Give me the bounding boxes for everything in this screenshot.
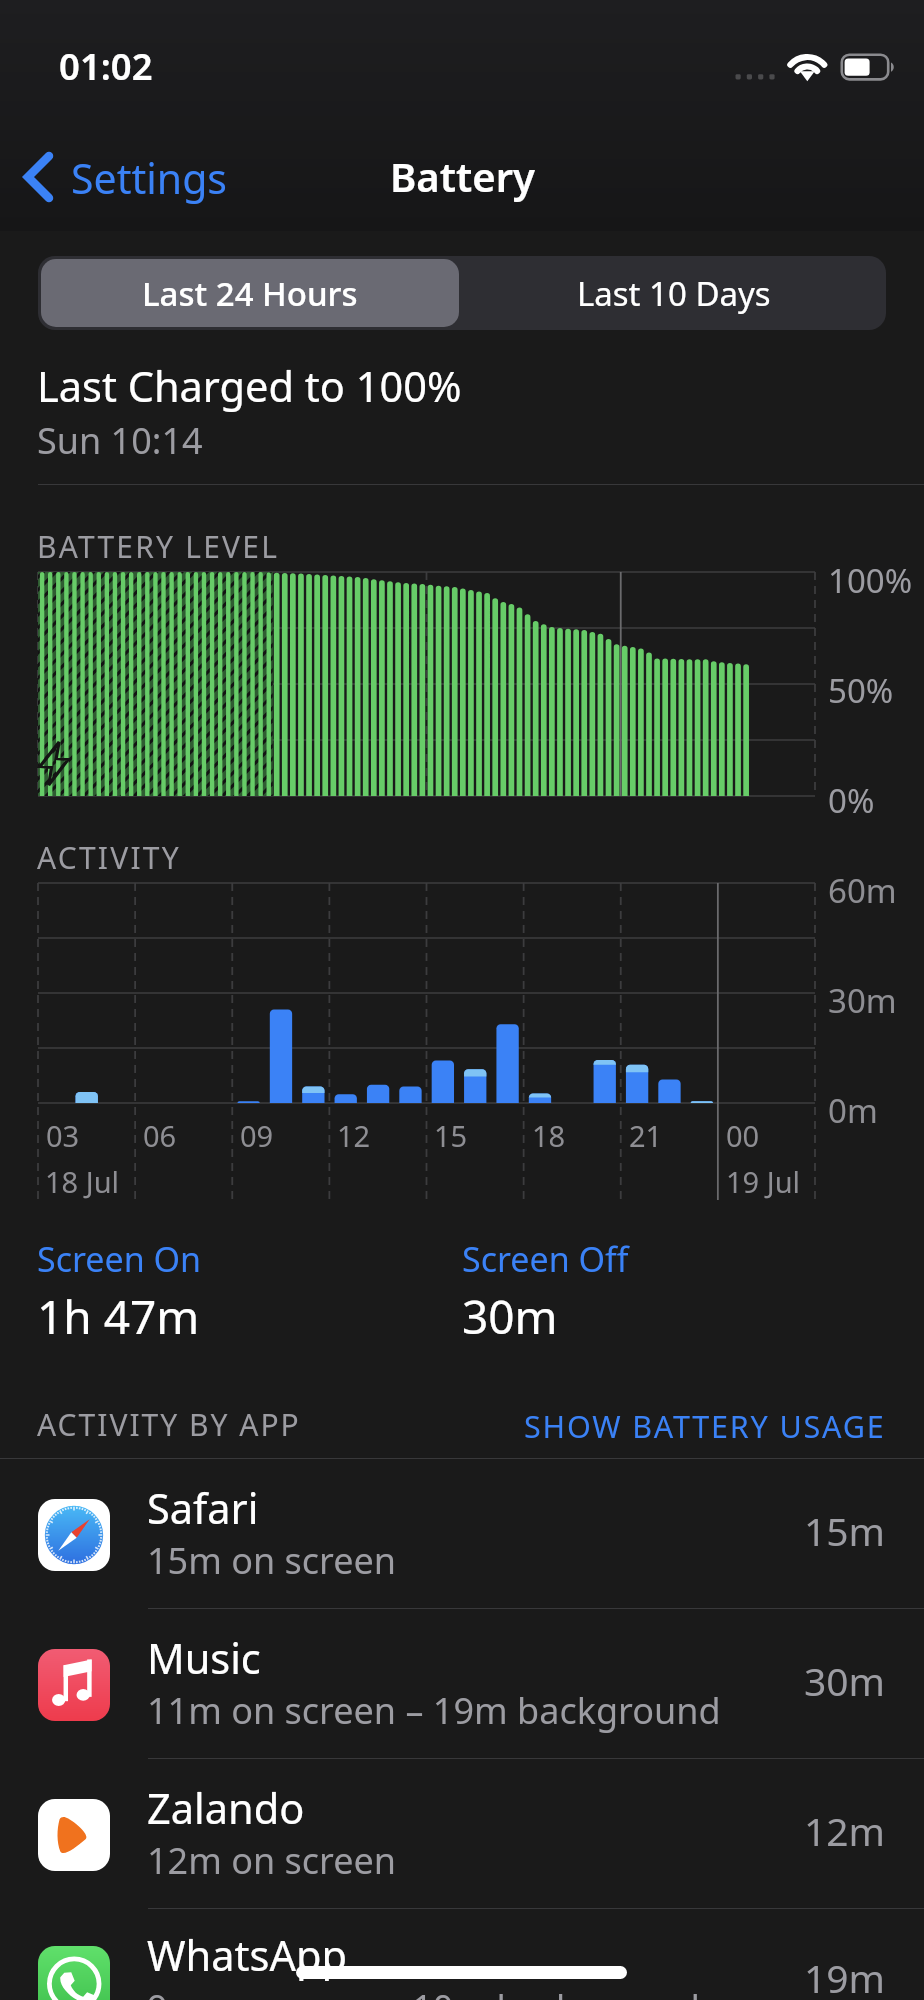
staticText: 19 Jul	[726, 1162, 801, 1201]
staticText: 12	[337, 1116, 371, 1155]
staticText: 09	[240, 1116, 274, 1155]
staticText: WhatsApp	[147, 1927, 347, 1984]
staticText: 15m on screen	[147, 1536, 397, 1585]
staticText: Sun 10:14	[37, 416, 203, 465]
staticText: Last 24 Hours	[142, 271, 358, 316]
staticText: 01:02	[59, 41, 153, 91]
staticText: 15	[434, 1116, 468, 1155]
staticText: Zalando	[147, 1780, 305, 1837]
staticText: BATTERY LEVEL	[37, 526, 280, 567]
staticText: Screen On	[37, 1236, 202, 1282]
staticText: 60m	[828, 868, 897, 913]
staticText: Safari	[147, 1480, 259, 1537]
staticText: 19m	[804, 1951, 886, 2000]
button[interactable]: Music	[0, 1609, 924, 1759]
button[interactable]: Safari	[0, 1459, 924, 1609]
staticText: 03	[46, 1116, 80, 1155]
staticText: 11m on screen – 19m background	[147, 1686, 721, 1735]
button[interactable]: Last 24 Hours	[41, 259, 459, 327]
staticText: 0m	[828, 1088, 878, 1133]
staticText: 30m	[804, 1654, 886, 1707]
button[interactable]: WhatsApp	[0, 1906, 924, 2000]
staticText: 21	[629, 1116, 663, 1155]
staticText: Last Charged to 100%	[37, 358, 462, 415]
staticText: 06	[143, 1116, 177, 1155]
staticText: ACTIVITY BY APP	[37, 1404, 301, 1445]
staticText: 0%	[828, 778, 875, 823]
button[interactable]: SHOW BATTERY USAGE	[486, 1394, 924, 1458]
button[interactable]: Settings	[12, 140, 242, 214]
staticText: 1h 47m	[37, 1285, 200, 1348]
button[interactable]: Last 10 Days	[462, 256, 886, 330]
staticText: 50%	[828, 668, 894, 713]
staticText: 9m on screen – 10m background	[147, 1983, 700, 2000]
staticText: 15m	[804, 1504, 886, 1557]
staticText: 00	[726, 1116, 760, 1155]
staticText: 18	[532, 1116, 566, 1155]
staticText: Screen Off	[462, 1236, 629, 1282]
staticText: 12m on screen	[147, 1836, 397, 1885]
staticText: 100%	[828, 558, 913, 603]
staticText: Last 10 Days	[577, 271, 771, 316]
staticText: Settings	[71, 150, 228, 206]
staticText: 30m	[462, 1285, 558, 1348]
staticText: 12m	[804, 1804, 886, 1857]
button[interactable]: Zalando	[0, 1759, 924, 1909]
staticText: Music	[147, 1630, 261, 1687]
staticText: 18 Jul	[45, 1162, 120, 1201]
staticText: 30m	[828, 978, 897, 1023]
staticText: Battery	[390, 149, 535, 203]
staticText: ACTIVITY	[37, 837, 181, 878]
